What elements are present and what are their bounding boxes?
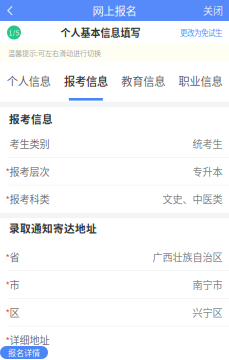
staticText: * [5, 305, 9, 319]
staticText: 报考信息 [64, 73, 108, 89]
staticText: 统考生 [192, 136, 222, 151]
staticText: 更改为免试生 [180, 27, 222, 38]
staticText: * [5, 278, 9, 291]
staticText: 录取通知寄达地址 [9, 220, 97, 235]
staticText: 广西壮族自治区 [152, 249, 222, 264]
staticText: 详细地址 [9, 333, 49, 347]
staticText: 报考信息 [9, 111, 53, 126]
staticText: 个人信息 [7, 73, 51, 89]
staticText: 文史、中医类 [162, 192, 222, 206]
button[interactable]: 报考信息 [57, 62, 114, 102]
staticText: 教育信息 [121, 73, 165, 89]
staticText: 报名详情 [8, 347, 40, 358]
button[interactable]: * [0, 243, 229, 271]
button[interactable]: 报名详情 [0, 346, 48, 359]
staticText: * [5, 164, 9, 178]
button[interactable]: 关闭 [197, 0, 229, 21]
staticText: * [5, 333, 9, 347]
staticText: 报考层次 [9, 164, 49, 179]
staticText: 1/5 [8, 28, 19, 37]
button[interactable]: * [0, 299, 229, 326]
button[interactable]: 个人信息 [0, 62, 57, 102]
button[interactable]: * [0, 271, 229, 299]
staticText: 网上报名 [92, 2, 136, 19]
staticText: 个人基本信息填写 [60, 25, 140, 40]
staticText: 考生类别 [9, 136, 49, 151]
button[interactable]: 更改为免试生 [180, 21, 229, 44]
button[interactable]: 考生类别 [0, 130, 229, 158]
staticText: 关闭 [203, 3, 223, 18]
staticText: 温馨提示:可左右滑动进行切换 [8, 48, 101, 58]
staticText: * [5, 192, 9, 206]
button[interactable]: * [0, 326, 229, 354]
staticText: * [5, 250, 9, 264]
button[interactable]: 返回 [0, 0, 20, 21]
staticText: 区 [9, 305, 19, 320]
staticText: 市 [9, 277, 19, 292]
staticText: 省 [9, 249, 19, 264]
staticText: 南宁市 [192, 277, 222, 292]
staticText: 专升本 [192, 164, 222, 179]
button[interactable]: * [0, 185, 229, 213]
button[interactable]: 职业信息 [172, 62, 229, 102]
button[interactable]: * [0, 158, 229, 185]
staticText: 兴宁区 [192, 305, 222, 320]
staticText: 职业信息 [178, 73, 222, 89]
staticText: 报考科类 [9, 192, 49, 206]
button[interactable]: 教育信息 [114, 62, 172, 102]
